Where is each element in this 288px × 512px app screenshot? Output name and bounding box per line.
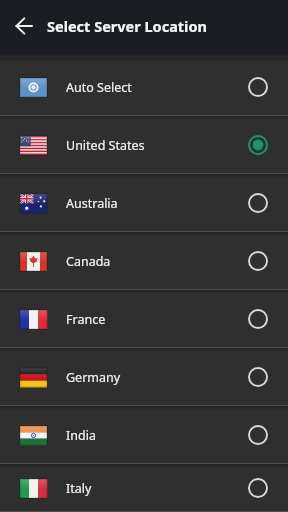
button[interactable]: Italy	[0, 464, 288, 512]
staticText: India	[66, 427, 96, 444]
staticText: Auto Select	[66, 79, 132, 96]
button[interactable]: Auto Select	[0, 58, 288, 116]
staticText: Select Server Location	[47, 16, 207, 36]
button[interactable]: United States	[0, 116, 288, 174]
staticText: United States	[66, 137, 145, 154]
button[interactable]: Canada	[0, 232, 288, 290]
staticText: Germany	[66, 369, 121, 386]
button[interactable]	[6, 8, 42, 44]
button[interactable]: India	[0, 406, 288, 464]
staticText: Canada	[66, 253, 111, 270]
button[interactable]: Germany	[0, 348, 288, 406]
staticText: Italy	[66, 480, 92, 497]
button[interactable]: Australia	[0, 174, 288, 232]
staticText: France	[66, 311, 106, 328]
staticText: Australia	[66, 195, 118, 212]
button[interactable]: France	[0, 290, 288, 348]
